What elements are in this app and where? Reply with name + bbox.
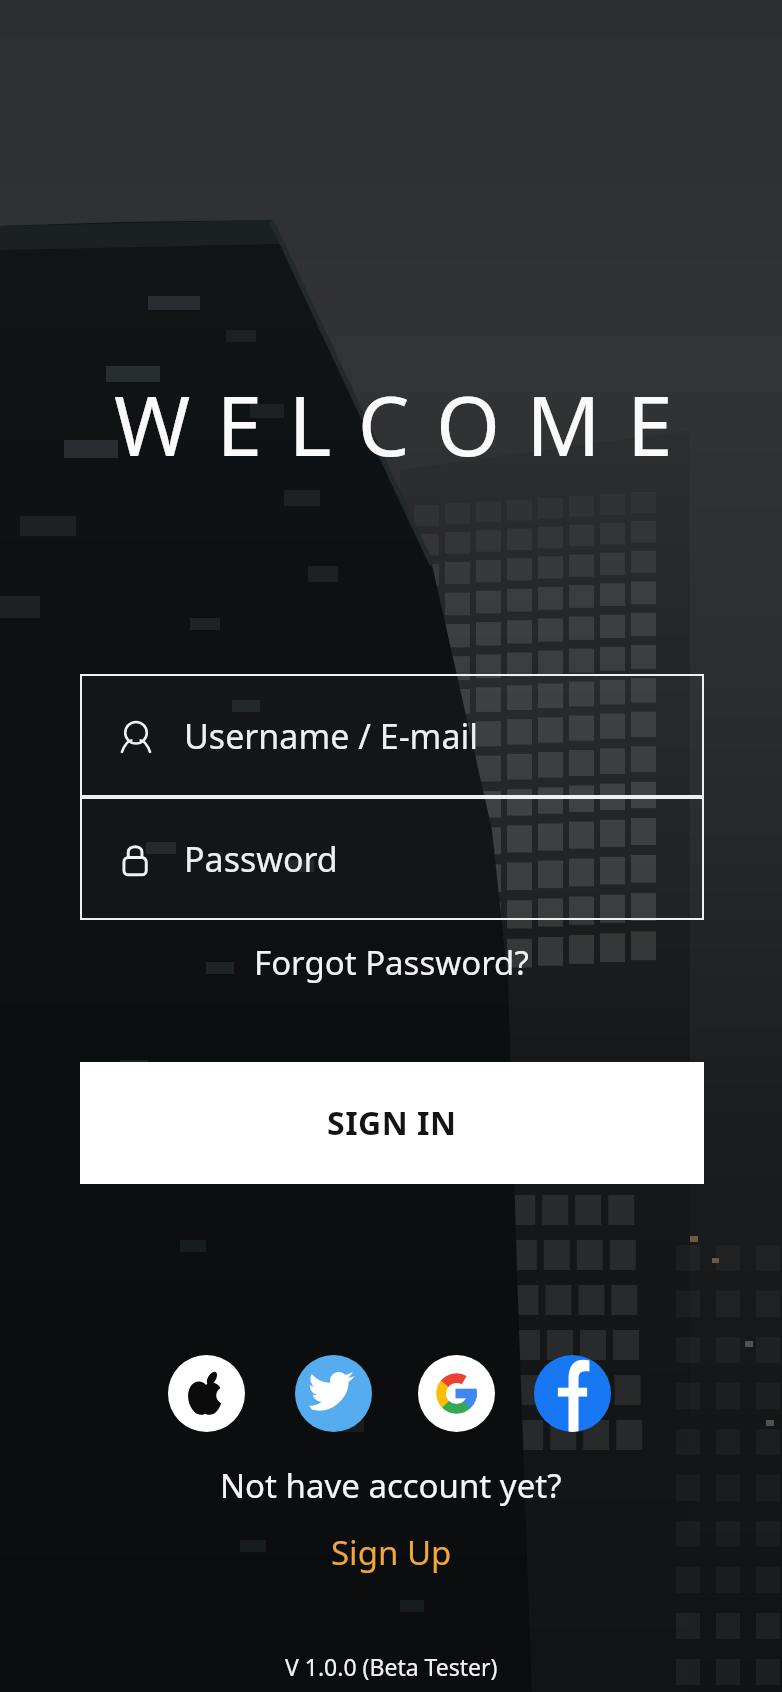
staticText: W E L C O M E [114,368,676,464]
staticText: Not have account yet? [220,1463,562,1508]
button[interactable]: SIGN IN [80,1062,704,1184]
staticText: Password [184,836,338,882]
button[interactable]: Password [80,797,704,920]
staticText: Username / E-mail [184,713,478,759]
button[interactable]: Username / E-mail [80,674,704,797]
button[interactable] [418,1355,495,1432]
button[interactable]: Sign Up [331,1526,452,1578]
staticText: V 1.0.0 (Beta Tester) [285,1651,498,1682]
button[interactable] [534,1355,611,1432]
staticText: Sign Up [331,1530,452,1575]
staticText: SIGN IN [327,1101,457,1145]
staticText: Forgot Password? [254,940,529,985]
button[interactable]: Forgot Password? [254,934,529,990]
button[interactable] [168,1355,245,1432]
button[interactable] [295,1355,372,1432]
